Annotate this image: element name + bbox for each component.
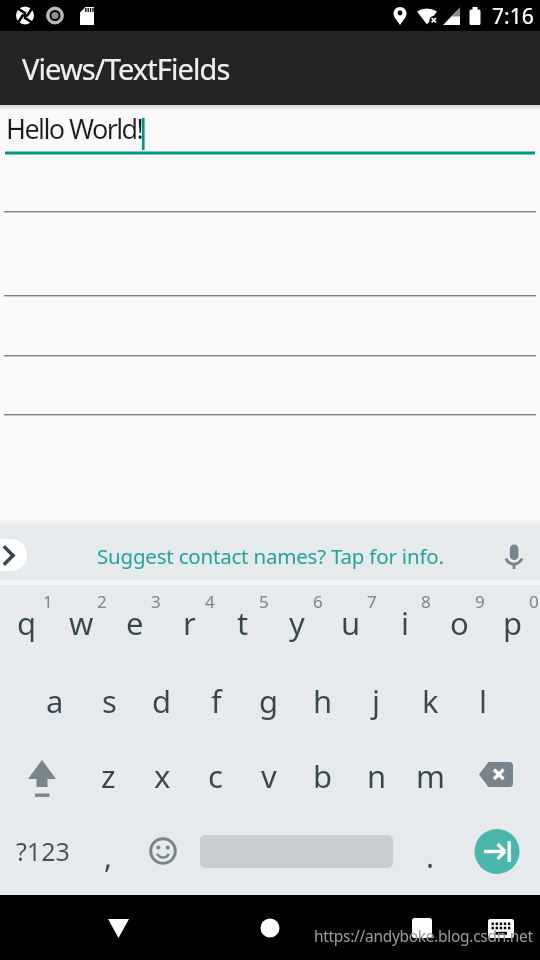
staticText: 3 (151, 590, 161, 613)
button[interactable]: b (296, 739, 350, 812)
staticText: g (259, 680, 279, 722)
staticText: y (289, 602, 305, 644)
staticText: s (102, 680, 117, 722)
staticText: 6 (313, 590, 323, 613)
staticText: . (426, 836, 435, 877)
button[interactable] (0, 359, 540, 415)
button[interactable]: n (350, 739, 404, 812)
button[interactable]: a (28, 663, 82, 739)
button[interactable]: x (135, 739, 189, 812)
button[interactable] (0, 215, 540, 296)
staticText: x (154, 755, 171, 797)
staticText: h (313, 680, 333, 722)
button[interactable]: m (403, 739, 457, 812)
staticText: 0 (529, 590, 539, 613)
button[interactable]: u (324, 585, 378, 660)
button[interactable]: l (456, 663, 510, 739)
staticText: 7:16 (492, 2, 534, 31)
staticText: j (372, 680, 380, 722)
button[interactable]: h (296, 663, 350, 739)
button[interactable] (0, 539, 27, 571)
button[interactable] (136, 812, 190, 888)
button[interactable]: i (378, 585, 432, 660)
staticText: c (208, 755, 223, 797)
button[interactable]: Suggest contact names? Tap for info. (10, 516, 530, 596)
staticText: 4 (205, 590, 215, 613)
staticText: https://andyboke.blog.csdn.net (314, 925, 533, 946)
button[interactable] (240, 895, 301, 960)
button[interactable]: Hello World! (0, 105, 540, 154)
staticText: p (503, 602, 523, 644)
button[interactable]: ?123 (0, 811, 143, 891)
staticText: w (69, 602, 94, 644)
staticText: t (237, 602, 249, 644)
staticText: 1 (43, 590, 53, 613)
staticText: Hello World! (6, 110, 143, 147)
staticText: 9 (475, 590, 485, 613)
staticText: Suggest contact names? Tap for info. (97, 542, 444, 570)
staticText: i (401, 602, 409, 644)
button[interactable] (0, 157, 540, 212)
staticText: a (46, 680, 64, 722)
staticText: z (101, 755, 116, 797)
button[interactable]: f (189, 663, 243, 739)
staticText: 2 (97, 590, 107, 613)
button[interactable]: c (188, 739, 242, 812)
button[interactable]: o (432, 585, 486, 660)
staticText: b (313, 755, 333, 797)
button[interactable]: y (270, 585, 324, 660)
button[interactable]: k (403, 663, 457, 739)
button[interactable]: z (81, 739, 135, 812)
staticText: , (104, 836, 113, 877)
button[interactable] (467, 739, 527, 812)
staticText: v (261, 755, 277, 797)
button[interactable]: Views/TextFields (22, 31, 422, 105)
button[interactable]: g (242, 663, 296, 739)
button[interactable]: , (8, 816, 208, 896)
button[interactable] (88, 895, 149, 960)
staticText: o (450, 602, 469, 644)
staticText: d (152, 680, 172, 722)
staticText: k (422, 680, 439, 722)
staticText: l (479, 680, 487, 722)
button[interactable]: e (108, 585, 162, 660)
staticText: f (211, 680, 222, 722)
staticText: 7 (367, 590, 377, 613)
button[interactable]: j (349, 663, 403, 739)
button[interactable]: q (0, 585, 54, 660)
staticText: Views/TextFields (22, 49, 230, 88)
button[interactable] (0, 299, 540, 356)
staticText: n (367, 755, 387, 797)
button[interactable] (474, 829, 520, 875)
staticText: q (17, 602, 37, 644)
staticText: 5 (259, 590, 269, 613)
button[interactable]: t (216, 585, 270, 660)
button[interactable]: . (330, 816, 530, 896)
button[interactable]: w (54, 585, 108, 660)
button[interactable]: s (82, 663, 136, 739)
staticText: r (183, 602, 196, 644)
button[interactable]: d (135, 663, 189, 739)
staticText: u (341, 602, 361, 644)
button[interactable]: r (162, 585, 216, 660)
staticText: ?123 (16, 834, 70, 868)
staticText: 8 (421, 590, 431, 613)
staticText: e (126, 602, 144, 644)
button[interactable]: p (486, 585, 540, 660)
button[interactable]: v (242, 739, 296, 812)
button[interactable] (470, 895, 531, 960)
staticText: m (416, 755, 445, 797)
button[interactable] (12, 739, 72, 812)
button[interactable] (392, 895, 453, 960)
